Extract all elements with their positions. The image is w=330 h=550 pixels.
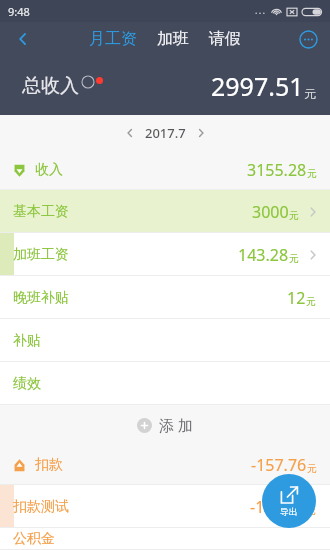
staticText: 加班工资 <box>13 246 69 264</box>
staticText: 补贴 <box>13 332 41 350</box>
staticText: 9:48 <box>8 4 30 19</box>
button[interactable]: 绩效 <box>0 362 330 405</box>
staticText: 元 <box>304 86 316 101</box>
staticText: 3000 <box>252 201 289 223</box>
staticText: 12 <box>287 287 306 309</box>
button[interactable]: 扣款 <box>0 445 330 485</box>
staticText: 扣款测试 <box>13 498 69 516</box>
button[interactable]: 公积金 <box>0 528 330 550</box>
staticText: 143.28 <box>238 244 289 266</box>
staticText: 导出 <box>280 506 298 517</box>
staticText: 2017.7 <box>145 124 186 142</box>
button[interactable]: 加班 <box>151 25 195 53</box>
staticText: -157.76 <box>250 496 306 518</box>
button[interactable]: 基本工资 <box>0 190 330 233</box>
staticText: 3155.28 <box>247 159 307 181</box>
staticText: 绩效 <box>13 375 41 393</box>
staticText: 公积金 <box>13 530 55 548</box>
button[interactable]: Back <box>0 22 46 56</box>
staticText: 2997.51 <box>211 69 304 103</box>
staticText: 元 <box>306 295 316 308</box>
staticText: 月工资 <box>89 29 137 49</box>
staticText: -157.76 <box>251 454 307 476</box>
button[interactable]: 添 加 <box>0 405 330 445</box>
staticText: 请假 <box>209 29 241 49</box>
button[interactable]: 晚班补贴 <box>0 276 330 319</box>
staticText: 晚班补贴 <box>13 289 69 307</box>
button[interactable]: 月工资 <box>83 25 143 53</box>
button[interactable]: More options <box>286 22 330 56</box>
staticText: 元 <box>306 504 316 517</box>
button[interactable]: 补贴 <box>0 319 330 362</box>
staticText: 添 加 <box>159 415 193 435</box>
button[interactable]: 请假 <box>203 25 247 53</box>
staticText: 元 <box>289 209 299 222</box>
button[interactable]: 扣款测试 <box>0 485 330 528</box>
button[interactable]: Previous month <box>115 118 145 148</box>
staticText: 收入 <box>35 161 63 179</box>
button[interactable]: 加班工资 <box>0 233 330 276</box>
button[interactable]: 收入 <box>0 150 330 190</box>
staticText: 加班 <box>157 29 189 49</box>
staticText: 元 <box>307 462 317 475</box>
staticText: 总收入 <box>22 74 79 98</box>
button[interactable]: Next month <box>186 118 216 148</box>
staticText: 基本工资 <box>13 203 69 221</box>
staticText: 扣款 <box>35 456 63 474</box>
staticText: 元 <box>307 167 317 180</box>
staticText: 元 <box>289 252 299 265</box>
button[interactable]: 导出 Export <box>262 474 316 528</box>
